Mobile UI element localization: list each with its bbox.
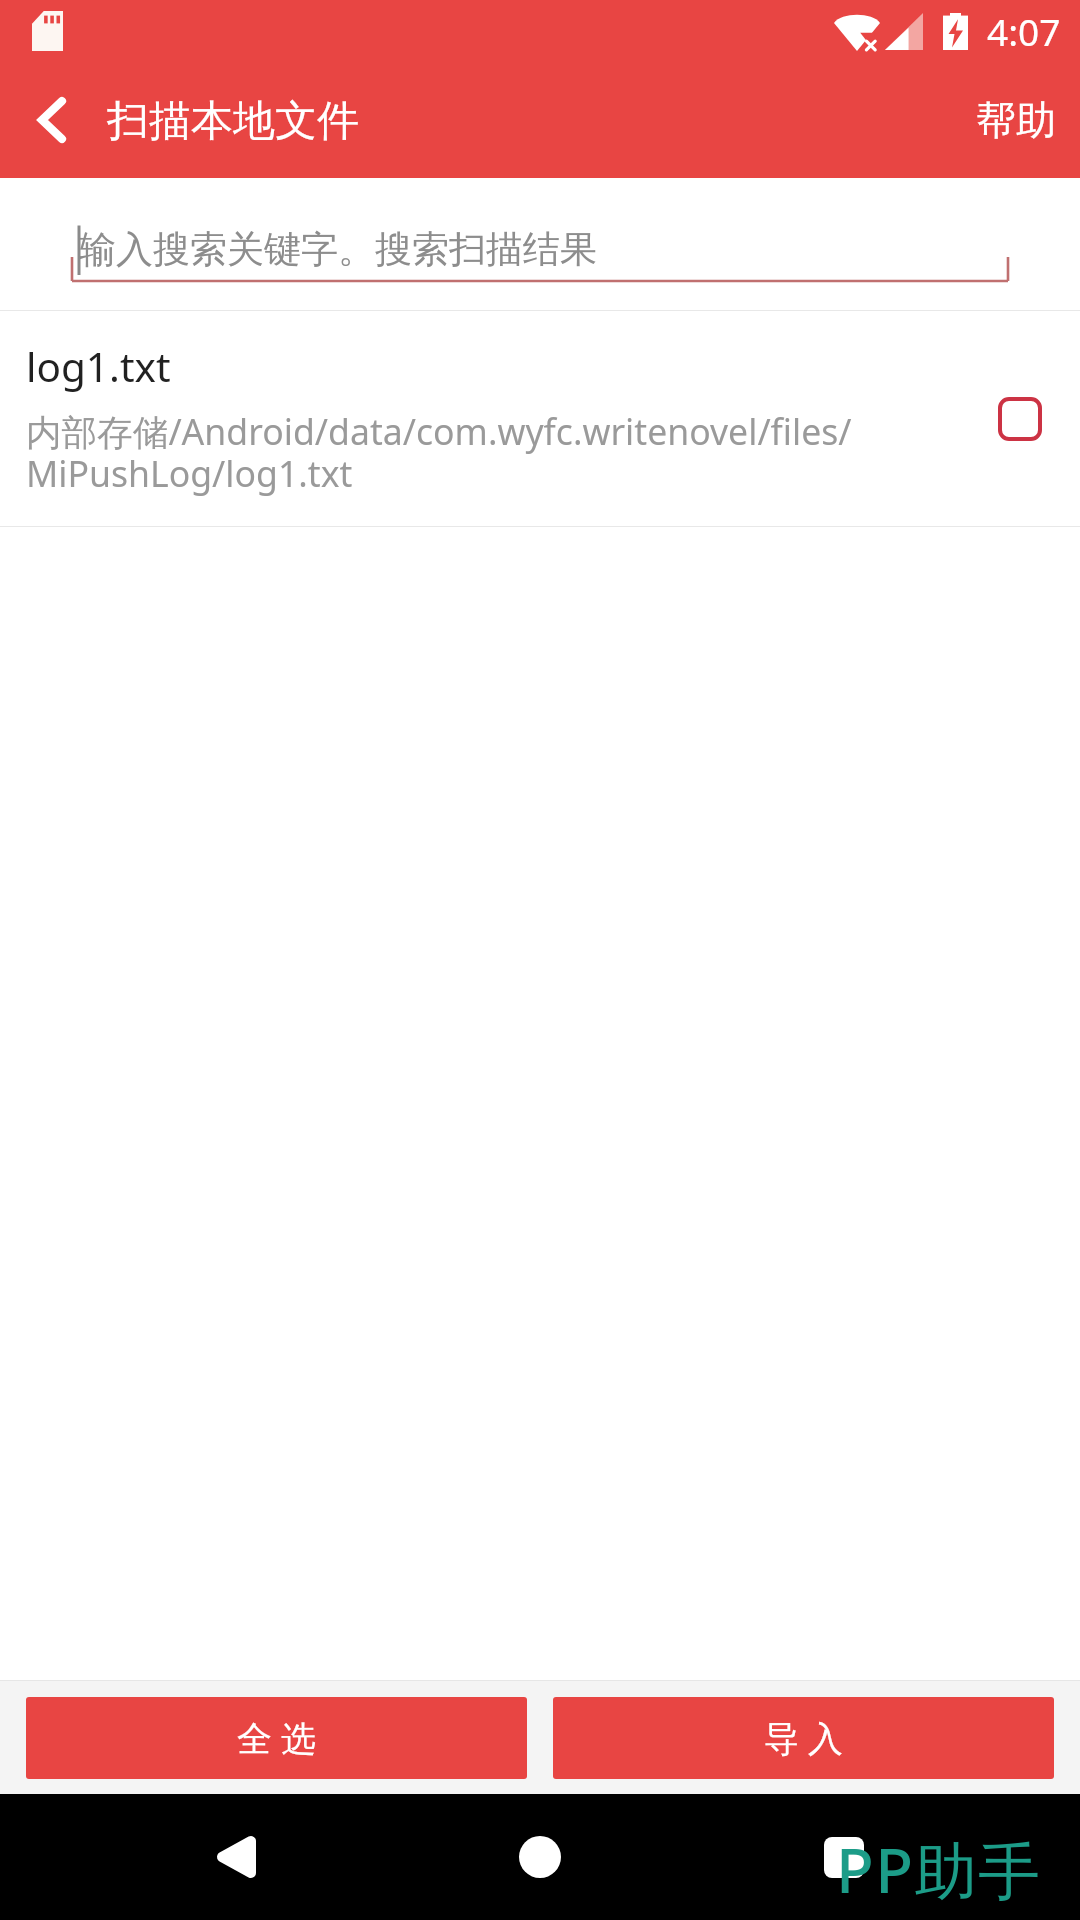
staticText: PP助手 — [836, 1827, 1042, 1912]
button[interactable]: Select log1.txt — [998, 397, 1042, 441]
staticText: log1.txt — [26, 339, 171, 394]
staticText: 扫描本地文件 — [107, 95, 359, 148]
staticText: 输入搜索关键字。搜索扫描结果 — [79, 226, 597, 273]
staticText: 导 入 — [764, 1714, 844, 1762]
button[interactable]: Home — [480, 1797, 600, 1917]
button[interactable]: 导 入 — [553, 1697, 1054, 1779]
button[interactable]: System back — [176, 1797, 296, 1917]
staticText: 4:07 — [987, 6, 1061, 56]
button[interactable]: log1.txt — [0, 311, 1080, 526]
button[interactable]: Back — [0, 65, 107, 175]
staticText: 内部存储/Android/data/com.wyfc.writenovel/fi… — [26, 407, 980, 498]
staticText: 帮助 — [976, 95, 1056, 145]
button[interactable]: 帮助 — [950, 75, 1080, 165]
staticText: 全 选 — [237, 1714, 317, 1762]
button[interactable]: 全 选 — [26, 1697, 527, 1779]
